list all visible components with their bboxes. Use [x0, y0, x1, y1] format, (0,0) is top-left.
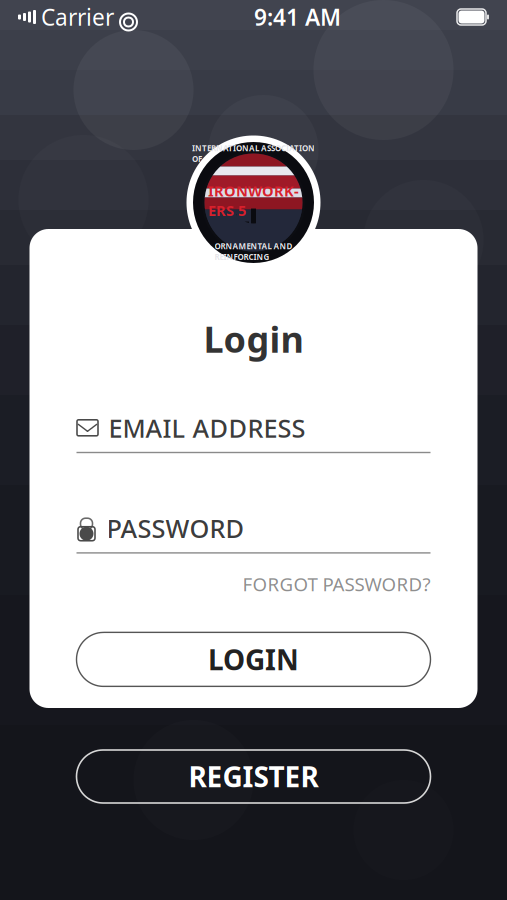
button[interactable]: LOGIN: [76, 632, 430, 686]
staticText: Carrier: [41, 2, 114, 32]
staticText: 9:41 AM: [254, 2, 341, 32]
staticText: ORNAMENTAL AND REINFORCING: [214, 241, 292, 262]
staticText: REGISTER: [188, 758, 318, 795]
staticText: FORGOT PASSWORD?: [242, 572, 430, 596]
staticText: Login: [203, 315, 303, 363]
staticText: INTERNATIONAL ASSOCIATION OF: [192, 143, 315, 164]
button[interactable]: REGISTER: [76, 750, 430, 803]
staticText: IRONWORKERS 5: [208, 181, 299, 220]
staticText: EMAIL ADDRESS: [108, 411, 305, 445]
button[interactable]: FORGOT PASSWORD?: [242, 568, 430, 600]
staticText: LOGIN: [208, 641, 299, 678]
staticText: PASSWORD: [106, 511, 244, 545]
